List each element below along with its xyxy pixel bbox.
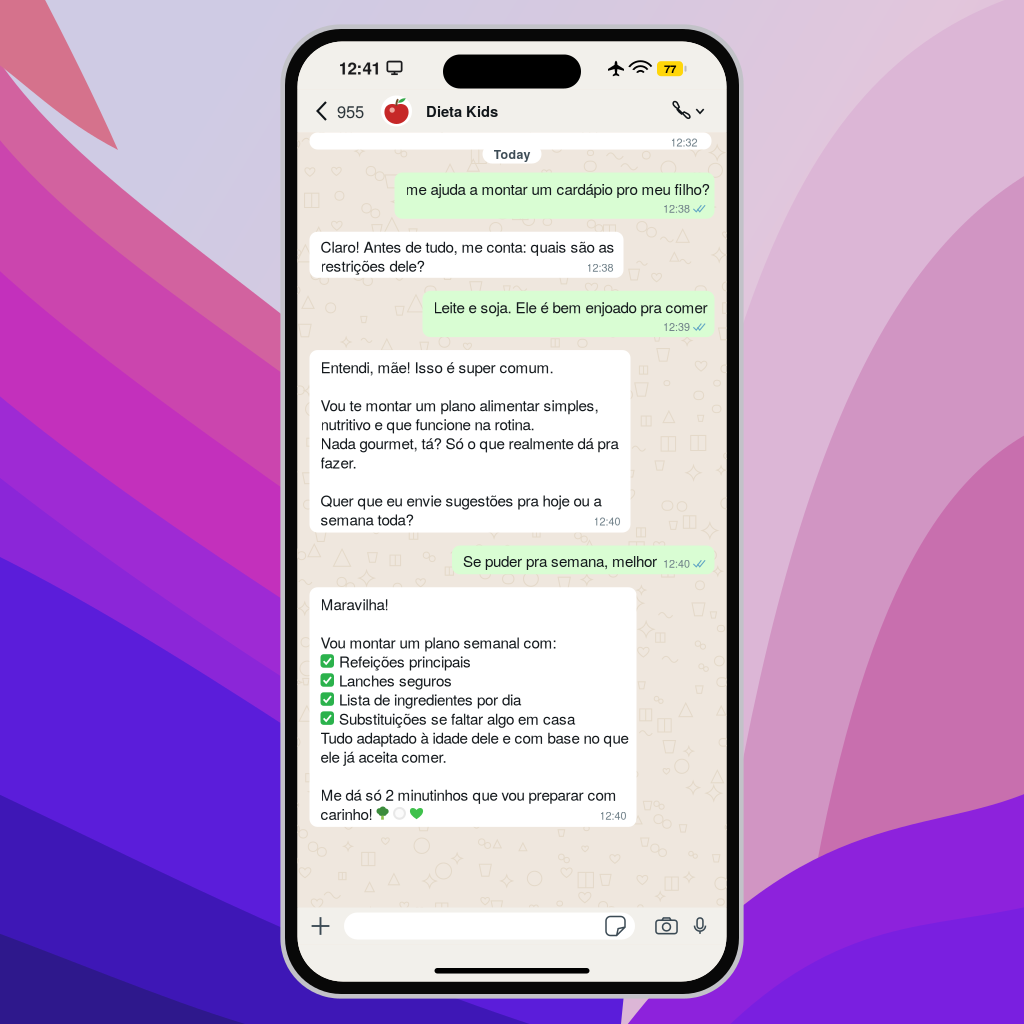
staticText: Nada gourmet, tá? Só o que realmente dá … [320, 432, 618, 454]
staticText: 12:40 [599, 807, 626, 823]
staticText: Me dá só 2 minutinhos que vou preparar c… [320, 783, 616, 805]
staticText: nutritivo e que funcione na rotina. [320, 413, 534, 435]
staticText: Substituições se faltar algo em casa [339, 707, 575, 729]
staticText: me ajuda a montar um cardápio pro meu fi… [405, 177, 709, 199]
staticText: Lista de ingredientes por dia [339, 688, 521, 710]
staticText: Today [493, 145, 530, 163]
staticText: Maravilha! [320, 593, 388, 615]
staticText: 12:40 [663, 555, 690, 571]
staticText: Tudo adaptado à idade dele e com base no… [320, 726, 628, 748]
staticText: Vou montar um plano semanal com: [320, 631, 556, 653]
button[interactable]: Camera [635, 907, 689, 944]
button[interactable]: Dieta Kids [381, 89, 498, 132]
button[interactable]: Voice message [689, 907, 727, 944]
staticText: ele já aceita comer. [320, 745, 446, 767]
staticText: 955 [337, 99, 364, 123]
staticText: Dieta Kids [426, 100, 498, 122]
staticText: Leite e soja. Ele é bem enjoado pra come… [433, 296, 707, 318]
button[interactable]: Attach [297, 907, 344, 944]
staticText: carinho! [320, 802, 372, 824]
staticText: Quer que eu envie sugestões pra hoje ou … [320, 489, 601, 511]
staticText: 12:39 [663, 319, 690, 334]
button[interactable]: Type a message [344, 912, 635, 939]
staticText: Se puder pra semana, melhor [463, 549, 657, 571]
staticText: Refeições principais [339, 650, 471, 672]
button[interactable]: Voice call [669, 89, 726, 132]
staticText: Claro! Antes de tudo, me conta: quais sã… [320, 235, 614, 257]
button[interactable]: 955 [297, 89, 381, 132]
staticText: 12:40 [593, 513, 620, 528]
staticText: 12:32 [670, 134, 697, 149]
staticText: restrições dele? [320, 254, 424, 276]
staticText: semana toda? [320, 508, 413, 530]
staticText: 12:38 [586, 259, 613, 275]
staticText: 77 [664, 60, 676, 77]
staticText: Vou te montar um plano alimentar simples… [320, 394, 598, 416]
staticText: 12:38 [663, 200, 690, 216]
staticText: fazer. [320, 451, 356, 473]
staticText: Entendi, mãe! Isso é super comum. [320, 356, 553, 377]
staticText: Lanches seguros [339, 669, 452, 691]
staticText: 12:41 [338, 55, 380, 80]
